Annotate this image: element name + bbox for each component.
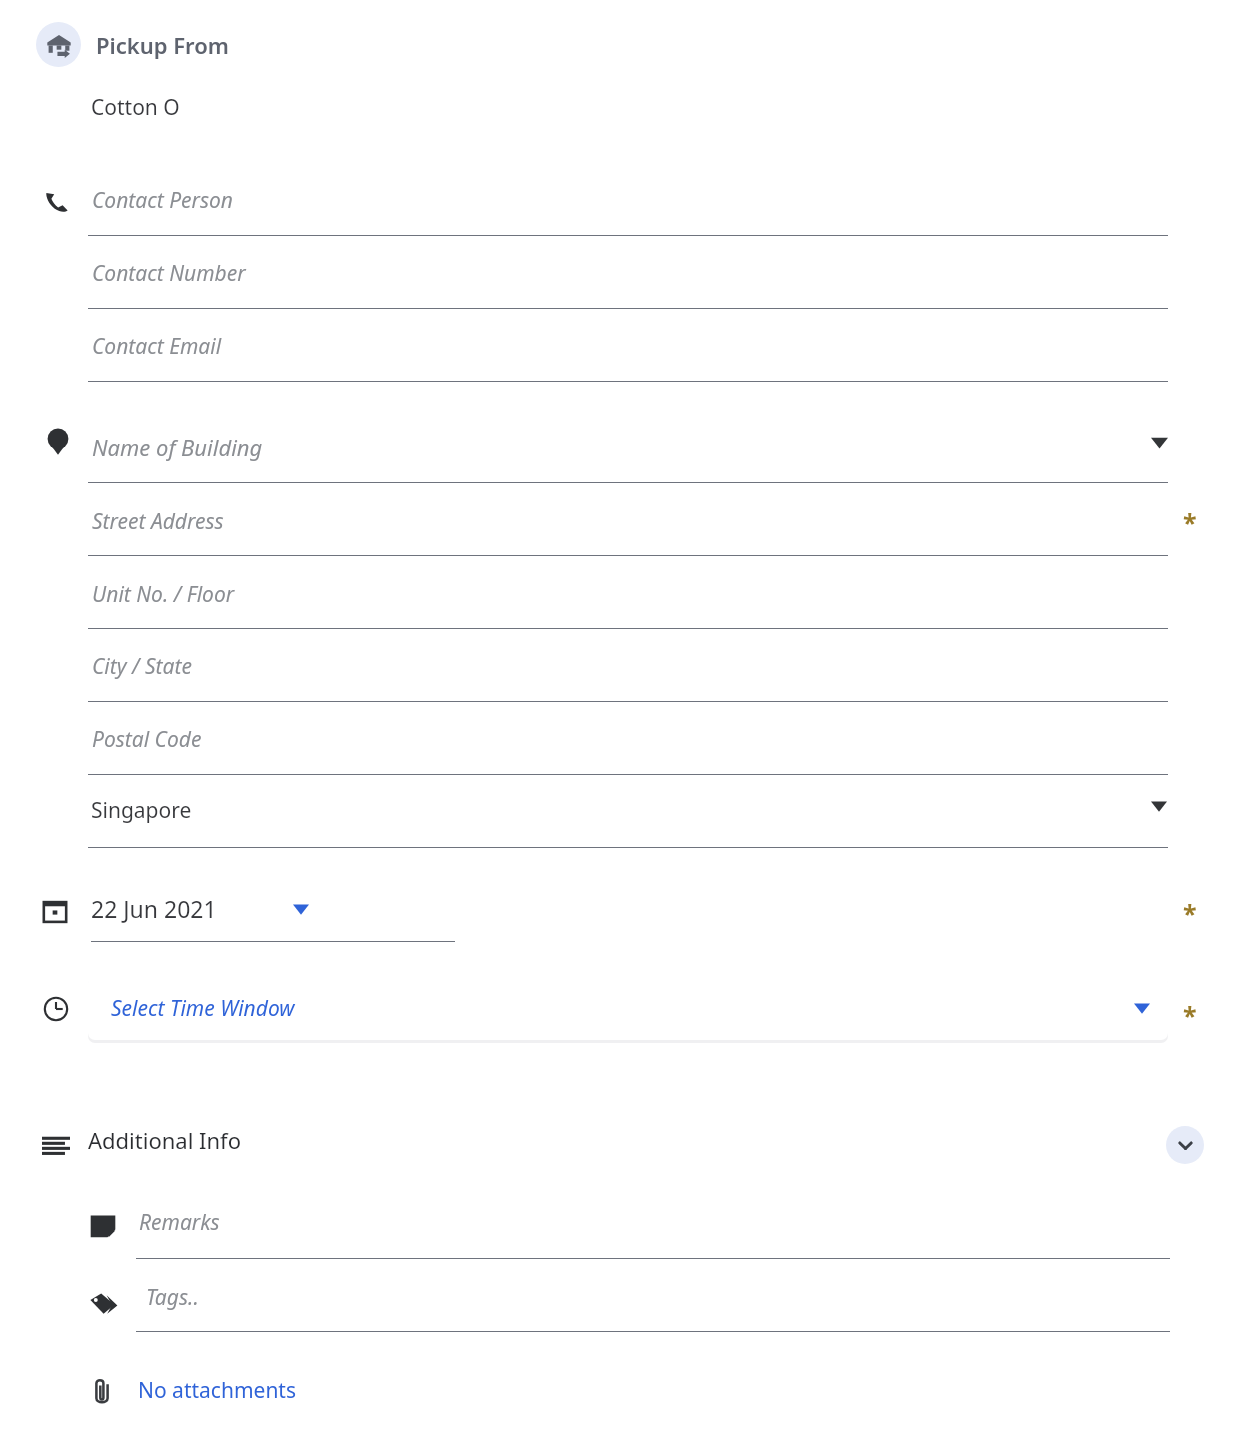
staticText: Singapore	[91, 796, 192, 825]
other: Contact	[43, 188, 71, 216]
staticText: Contact Number	[92, 259, 246, 288]
button[interactable]: Contact Number	[88, 249, 1168, 310]
staticText: Select Time Window	[111, 994, 295, 1023]
staticText: No attachments	[138, 1376, 297, 1405]
staticText: *	[1183, 998, 1197, 1032]
staticText: *	[1183, 505, 1197, 539]
staticText: Name of Building	[92, 432, 263, 462]
button[interactable]: Collapse additional info	[1166, 1126, 1204, 1164]
other: Time	[42, 995, 70, 1023]
staticText: Contact Person	[92, 186, 233, 215]
button[interactable]: 22 Jun 2021	[91, 893, 455, 924]
staticText: Postal Code	[92, 725, 202, 754]
staticText: Street Address	[92, 507, 224, 536]
staticText: Additional Info	[88, 1125, 241, 1155]
button[interactable]: Unit No. / Floor	[88, 570, 1168, 630]
other: Location	[45, 429, 71, 455]
button[interactable]: Select Time Window	[88, 976, 1168, 1040]
staticText: Pickup From	[96, 30, 229, 60]
button[interactable]: No attachments	[88, 1376, 297, 1405]
button[interactable]: Pickup From	[36, 22, 237, 67]
other: Remarks	[89, 1211, 117, 1239]
button[interactable]: Name of Building	[88, 422, 1168, 484]
staticText: Tags..	[146, 1283, 199, 1312]
staticText: Contact Email	[92, 332, 222, 361]
button[interactable]: Contact Email	[88, 322, 1168, 383]
staticText: Cotton O	[91, 93, 180, 122]
button[interactable]: Select country	[1141, 788, 1177, 824]
staticText: City / State	[92, 652, 192, 681]
staticText: 22 Jun 2021	[91, 893, 217, 924]
button[interactable]: Contact Person	[88, 176, 1168, 237]
button[interactable]: Postal Code	[88, 715, 1168, 776]
button[interactable]: Street Address	[88, 497, 1168, 557]
staticText: *	[1183, 896, 1197, 930]
staticText: Unit No. / Floor	[92, 580, 235, 609]
button[interactable]: Additional Info	[88, 1125, 241, 1155]
other: Date	[42, 899, 68, 925]
button[interactable]: City / State	[88, 642, 1168, 703]
staticText: Remarks	[139, 1208, 220, 1237]
button[interactable]: Select building	[1141, 424, 1177, 460]
other: Additional info	[42, 1131, 70, 1159]
other: Tags	[88, 1288, 118, 1318]
